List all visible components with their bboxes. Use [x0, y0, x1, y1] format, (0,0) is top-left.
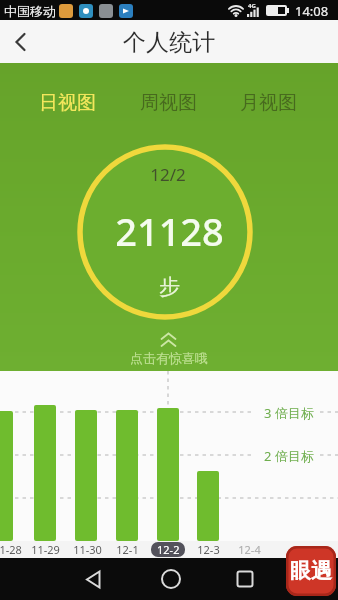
button[interactable]: 11-30 — [69, 541, 105, 558]
staticText: 21128 — [115, 205, 224, 257]
button[interactable] — [148, 558, 193, 600]
staticText: 3 倍目标 — [264, 404, 314, 421]
button[interactable]: 周视图 — [133, 90, 203, 116]
button[interactable]: 11-29 — [27, 541, 63, 558]
button[interactable]: 点击有惊喜哦 — [104, 349, 234, 367]
button[interactable]: 眼遇 — [286, 546, 336, 596]
staticText: 12-2 — [157, 542, 180, 557]
button[interactable]: 12-1 — [109, 541, 145, 558]
button[interactable] — [222, 558, 267, 600]
staticText: 12-3 — [197, 542, 220, 557]
staticText: 点击有惊喜哦 — [130, 350, 208, 366]
staticText: 周视图 — [140, 91, 197, 115]
staticText: 4G — [248, 2, 256, 10]
staticText: 12/2 — [150, 163, 186, 185]
staticText: 12-4 — [238, 542, 261, 557]
button[interactable]: 12-2 — [151, 542, 185, 557]
button[interactable] — [70, 558, 115, 600]
staticText: 2 倍目标 — [264, 447, 314, 464]
staticText: 日视图 — [39, 91, 96, 115]
button[interactable]: 月视图 — [233, 90, 303, 116]
staticText: 11-29 — [31, 542, 60, 557]
staticText: 月视图 — [240, 91, 297, 115]
staticText: 中国移动 — [4, 3, 56, 19]
button[interactable]: 12-4 — [231, 541, 267, 558]
staticText: 眼遇 — [290, 558, 332, 584]
staticText: 个人统计 — [123, 28, 215, 57]
staticText: 14:08 — [295, 2, 329, 20]
button[interactable] — [82, 149, 248, 315]
staticText: 12-1 — [116, 542, 139, 557]
button[interactable] — [2, 20, 38, 63]
button[interactable]: 12-3 — [190, 541, 226, 558]
staticText: 11-30 — [73, 542, 102, 557]
staticText: 11-28 — [0, 542, 22, 557]
staticText: 步 — [159, 274, 180, 300]
button[interactable]: 日视图 — [32, 90, 102, 116]
